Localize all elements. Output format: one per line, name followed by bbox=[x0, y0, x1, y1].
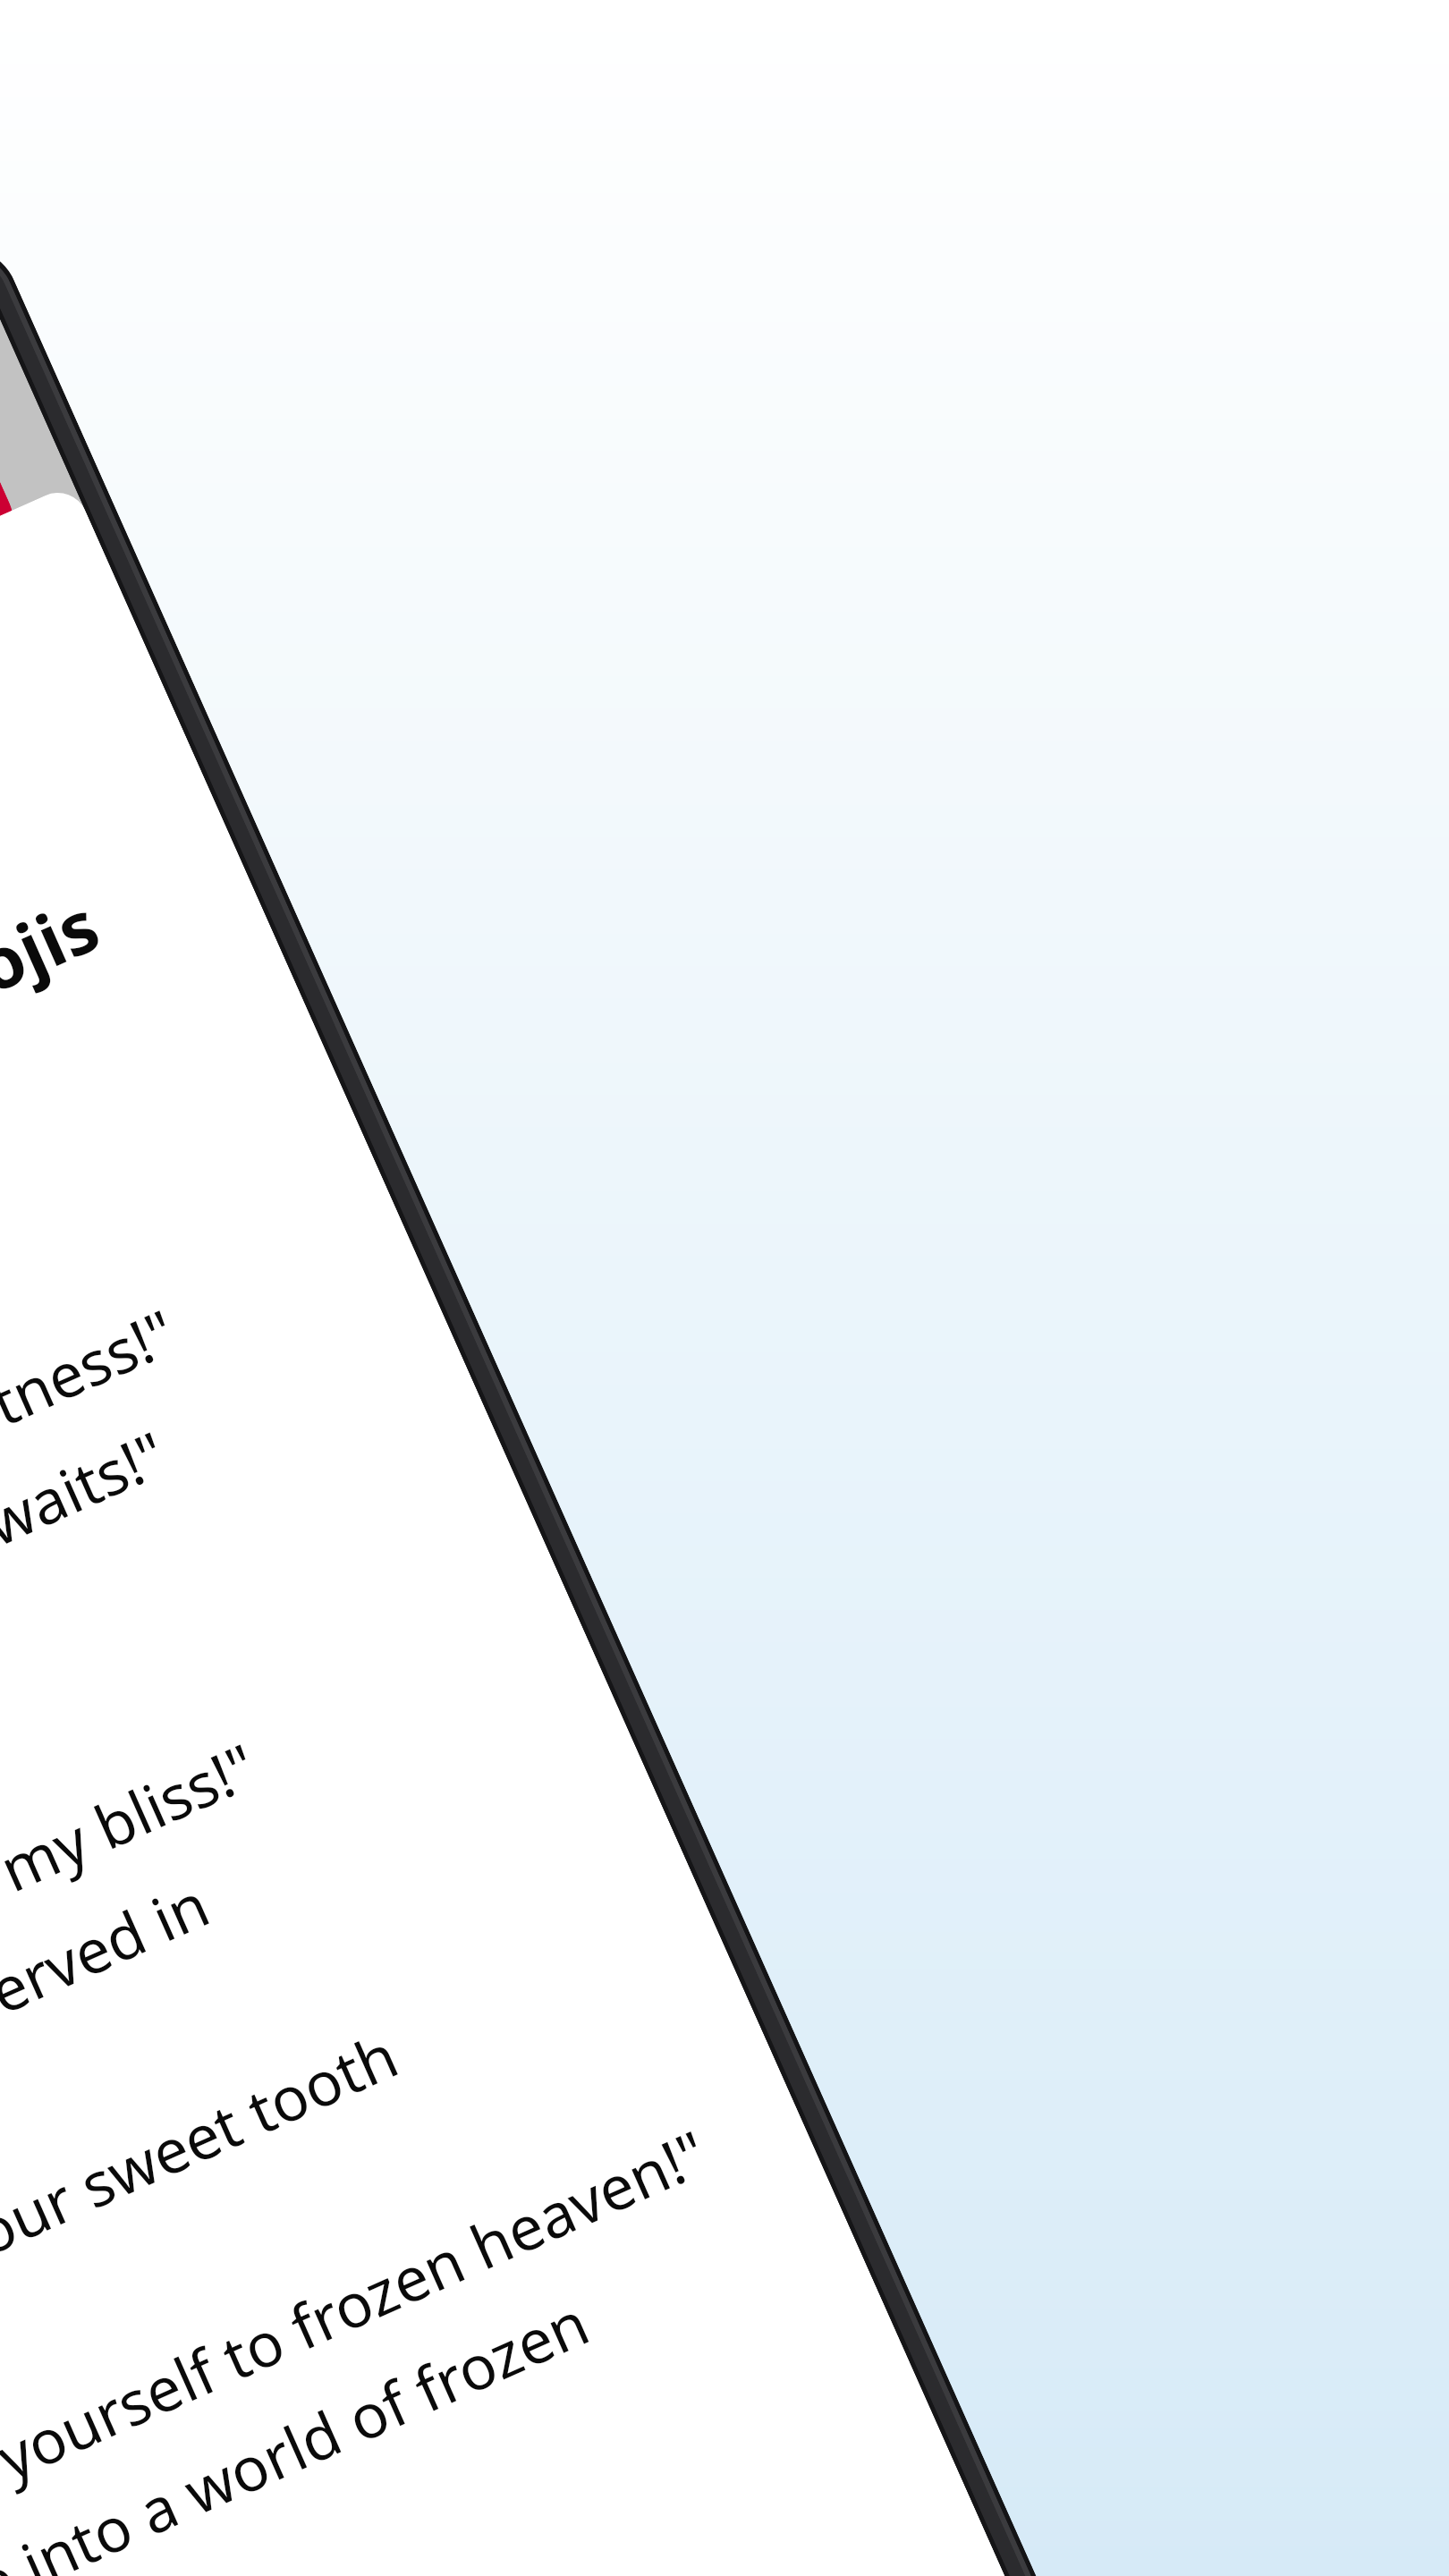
staticText: Yummy Ice Cream Emojis bbox=[0, 875, 113, 1329]
button[interactable]: "Indulge in cool sweetness!" "Your cold … bbox=[0, 1153, 917, 2576]
button[interactable]: Featured ice cream banner bbox=[0, 365, 23, 1029]
staticText: "Indulge in cool sweetness!" "Your cold … bbox=[0, 1227, 807, 2576]
button[interactable]: Yummy Ice Cream Emojis bbox=[0, 777, 269, 1468]
